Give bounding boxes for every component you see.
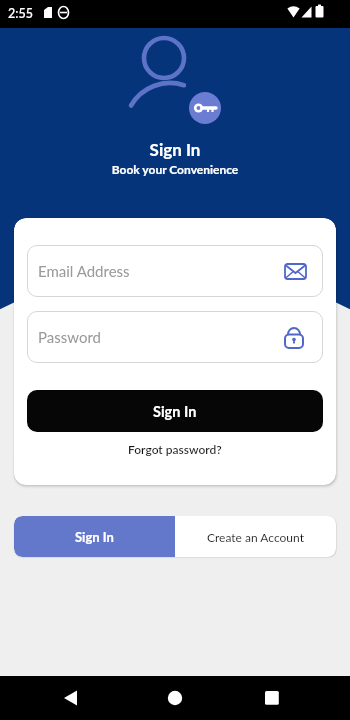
button[interactable] <box>233 676 350 720</box>
staticText: Book your Convenience <box>0 162 350 176</box>
staticText: Create an Account <box>207 530 304 544</box>
staticText: Email Address <box>38 262 130 280</box>
staticText: Sign In <box>75 529 114 545</box>
button[interactable] <box>116 676 233 720</box>
button[interactable]: Sign In <box>27 390 323 432</box>
staticText: Sign In <box>0 139 350 159</box>
button[interactable] <box>0 676 116 720</box>
button[interactable]: Email Address <box>27 245 323 297</box>
button[interactable]: Create an Account <box>175 516 336 557</box>
button[interactable]: Forgot password? <box>128 442 222 456</box>
staticText: Sign In <box>153 403 197 420</box>
staticText: Password <box>38 328 101 346</box>
staticText: 2:55 <box>8 6 33 21</box>
button[interactable]: Password <box>27 311 323 363</box>
button[interactable]: Sign In <box>14 516 175 557</box>
